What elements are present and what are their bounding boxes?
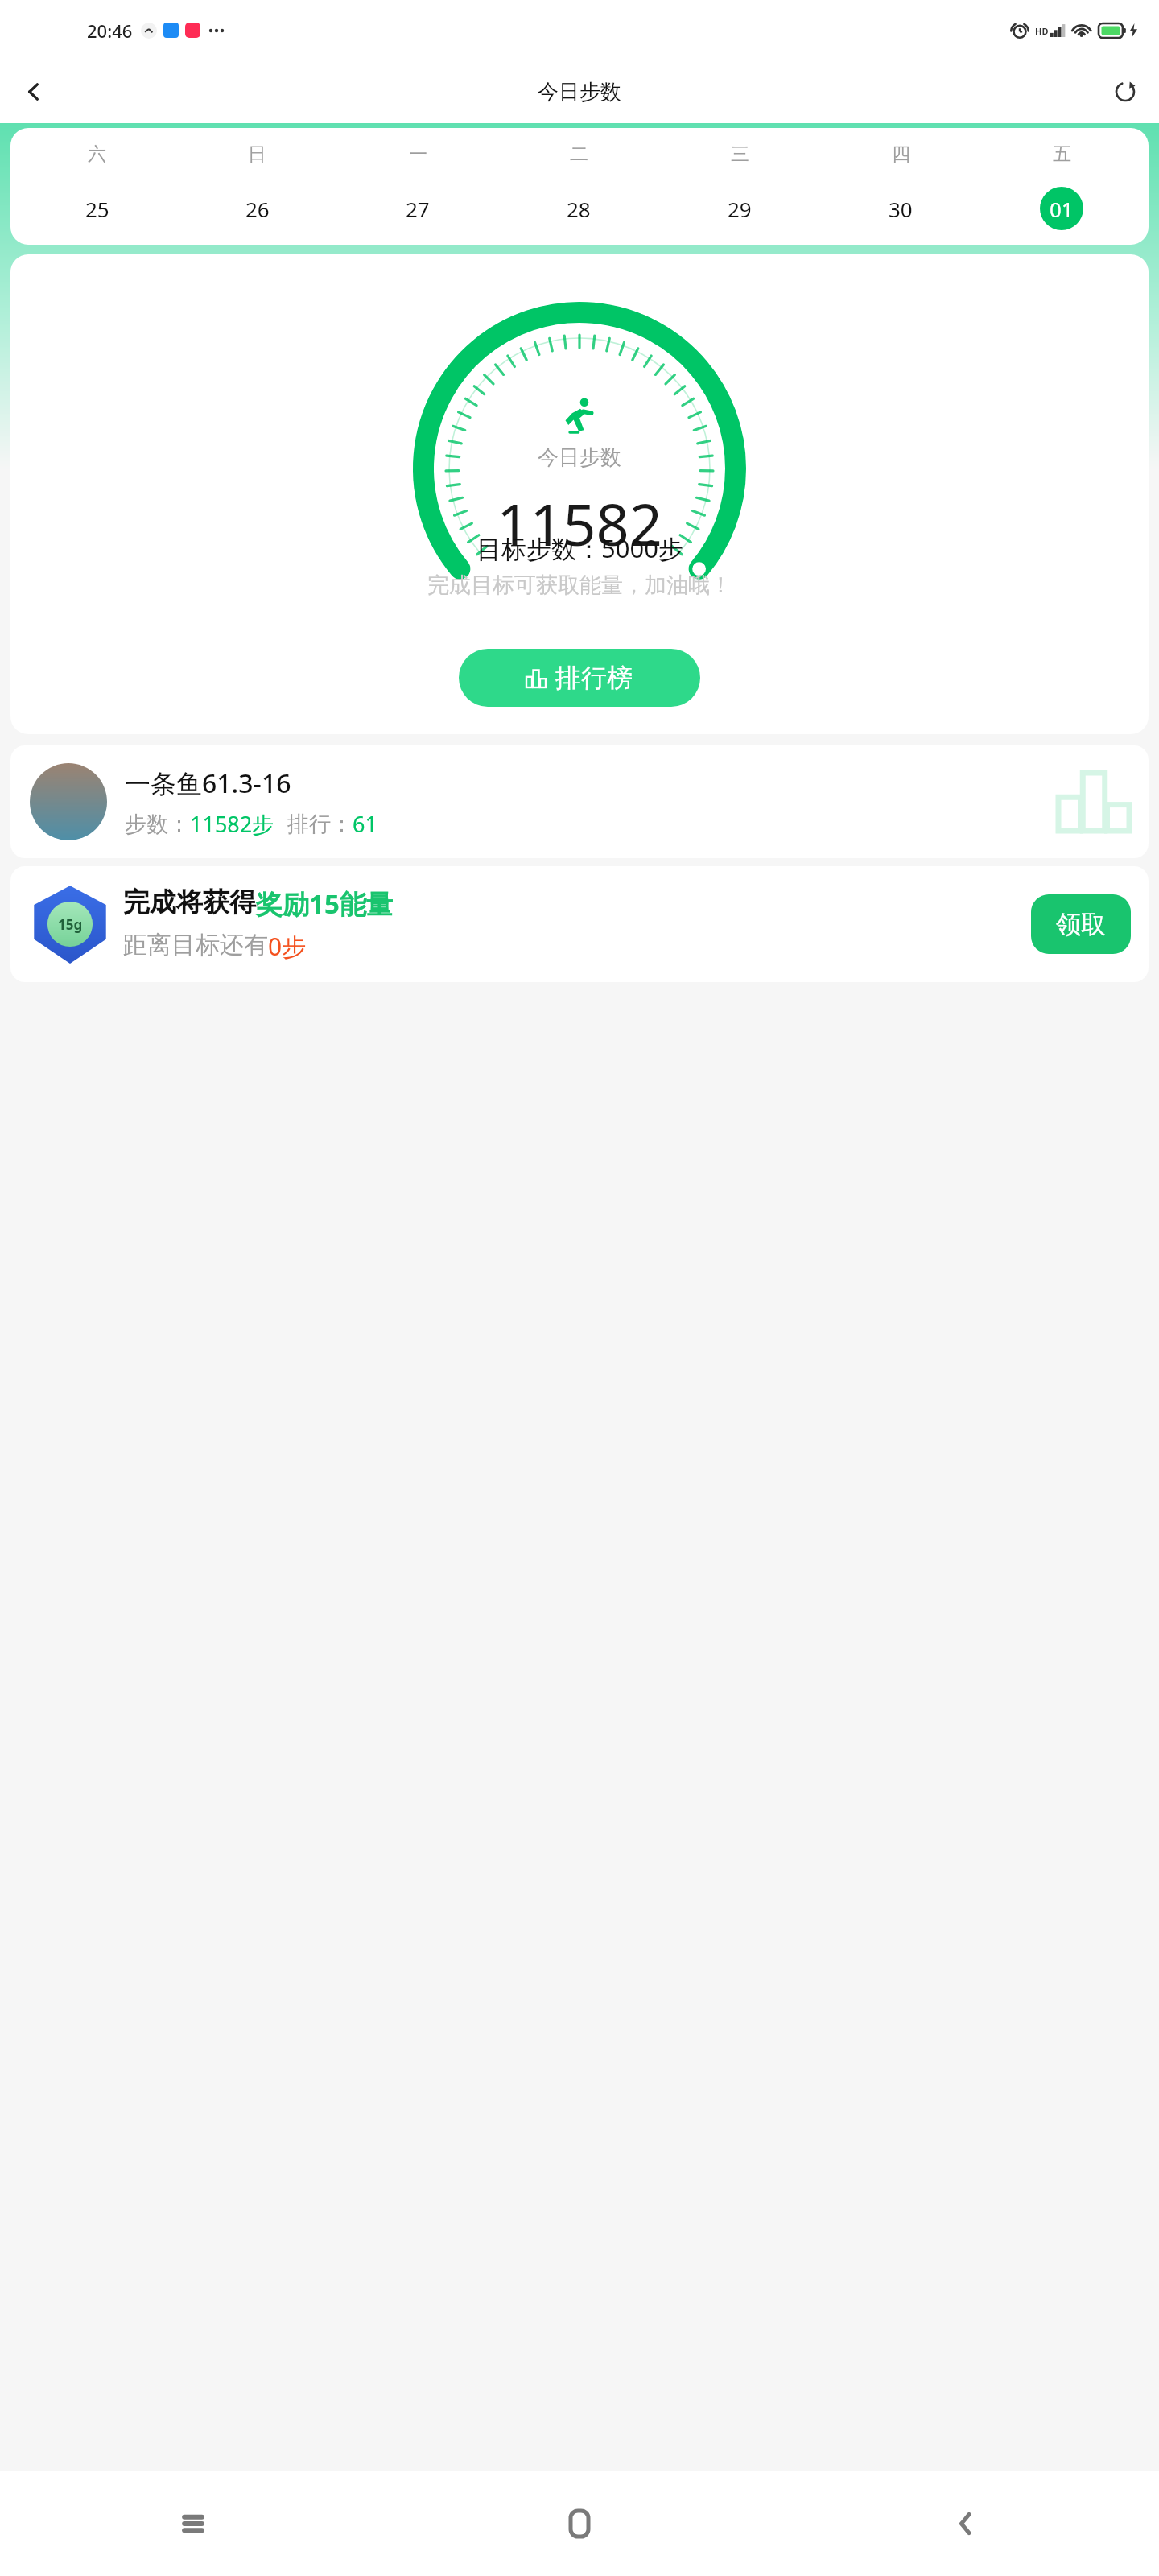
staticText: 30 bbox=[889, 195, 913, 223]
staticText: 今日步数 bbox=[538, 79, 621, 105]
button[interactable]: 29 bbox=[718, 187, 761, 230]
staticText: 四 bbox=[892, 142, 910, 166]
button[interactable]: 26 bbox=[236, 187, 279, 230]
staticText: 二 bbox=[570, 142, 588, 166]
staticText: 五 bbox=[1053, 142, 1071, 166]
staticText: 排行榜 bbox=[555, 662, 633, 694]
button[interactable]: 28 bbox=[557, 187, 600, 230]
staticText: 61 bbox=[353, 809, 377, 839]
staticText: 一 bbox=[409, 142, 427, 166]
button[interactable]: Home bbox=[386, 2471, 773, 2576]
button[interactable]: Recents bbox=[0, 2471, 386, 2576]
button[interactable]: 排行榜 bbox=[459, 649, 700, 707]
staticText: 11582步 bbox=[190, 809, 274, 839]
button[interactable]: 27 bbox=[396, 187, 439, 230]
staticText: 今日步数 bbox=[538, 444, 621, 471]
staticText: 完成目标可获取能量，加油哦！ bbox=[427, 572, 732, 599]
staticText: 25 bbox=[85, 195, 109, 223]
staticText: 01 bbox=[1050, 195, 1074, 223]
button[interactable]: Back bbox=[11, 69, 56, 114]
button[interactable]: 25 bbox=[76, 187, 119, 230]
staticText: 完成将获得 bbox=[123, 885, 256, 919]
staticText: 领取 bbox=[1056, 909, 1106, 940]
button[interactable]: 一条鱼61.3-16 bbox=[10, 745, 1149, 858]
staticText: 0步 bbox=[268, 930, 307, 963]
staticText: 奖励15能量 bbox=[256, 885, 393, 922]
button[interactable]: 六 bbox=[10, 128, 1149, 245]
button[interactable]: 01 bbox=[1040, 187, 1083, 230]
staticText: 15g bbox=[58, 915, 83, 934]
button[interactable]: Refresh bbox=[1103, 69, 1148, 114]
staticText: 28 bbox=[567, 195, 591, 223]
staticText: 距离目标还有 bbox=[123, 930, 268, 960]
staticText: 27 bbox=[406, 195, 430, 223]
button[interactable]: 领取 bbox=[1031, 894, 1131, 954]
staticText: 三 bbox=[731, 142, 749, 166]
button[interactable]: Back bbox=[773, 2471, 1159, 2576]
staticText: 29 bbox=[728, 195, 752, 223]
staticText: 11582 bbox=[497, 484, 662, 563]
staticText: HD bbox=[1035, 25, 1049, 37]
staticText: 目标步数：5000步 bbox=[476, 531, 683, 565]
staticText: 步数： bbox=[125, 811, 190, 838]
staticText: 20:46 bbox=[87, 19, 133, 43]
staticText: 排行： bbox=[287, 811, 353, 838]
staticText: 26 bbox=[245, 195, 270, 223]
button[interactable]: 15g bbox=[10, 866, 1149, 982]
button[interactable]: 30 bbox=[879, 187, 922, 230]
staticText: 日 bbox=[248, 142, 266, 166]
staticText: 一条鱼61.3-16 bbox=[125, 766, 291, 801]
staticText: 六 bbox=[88, 142, 106, 166]
